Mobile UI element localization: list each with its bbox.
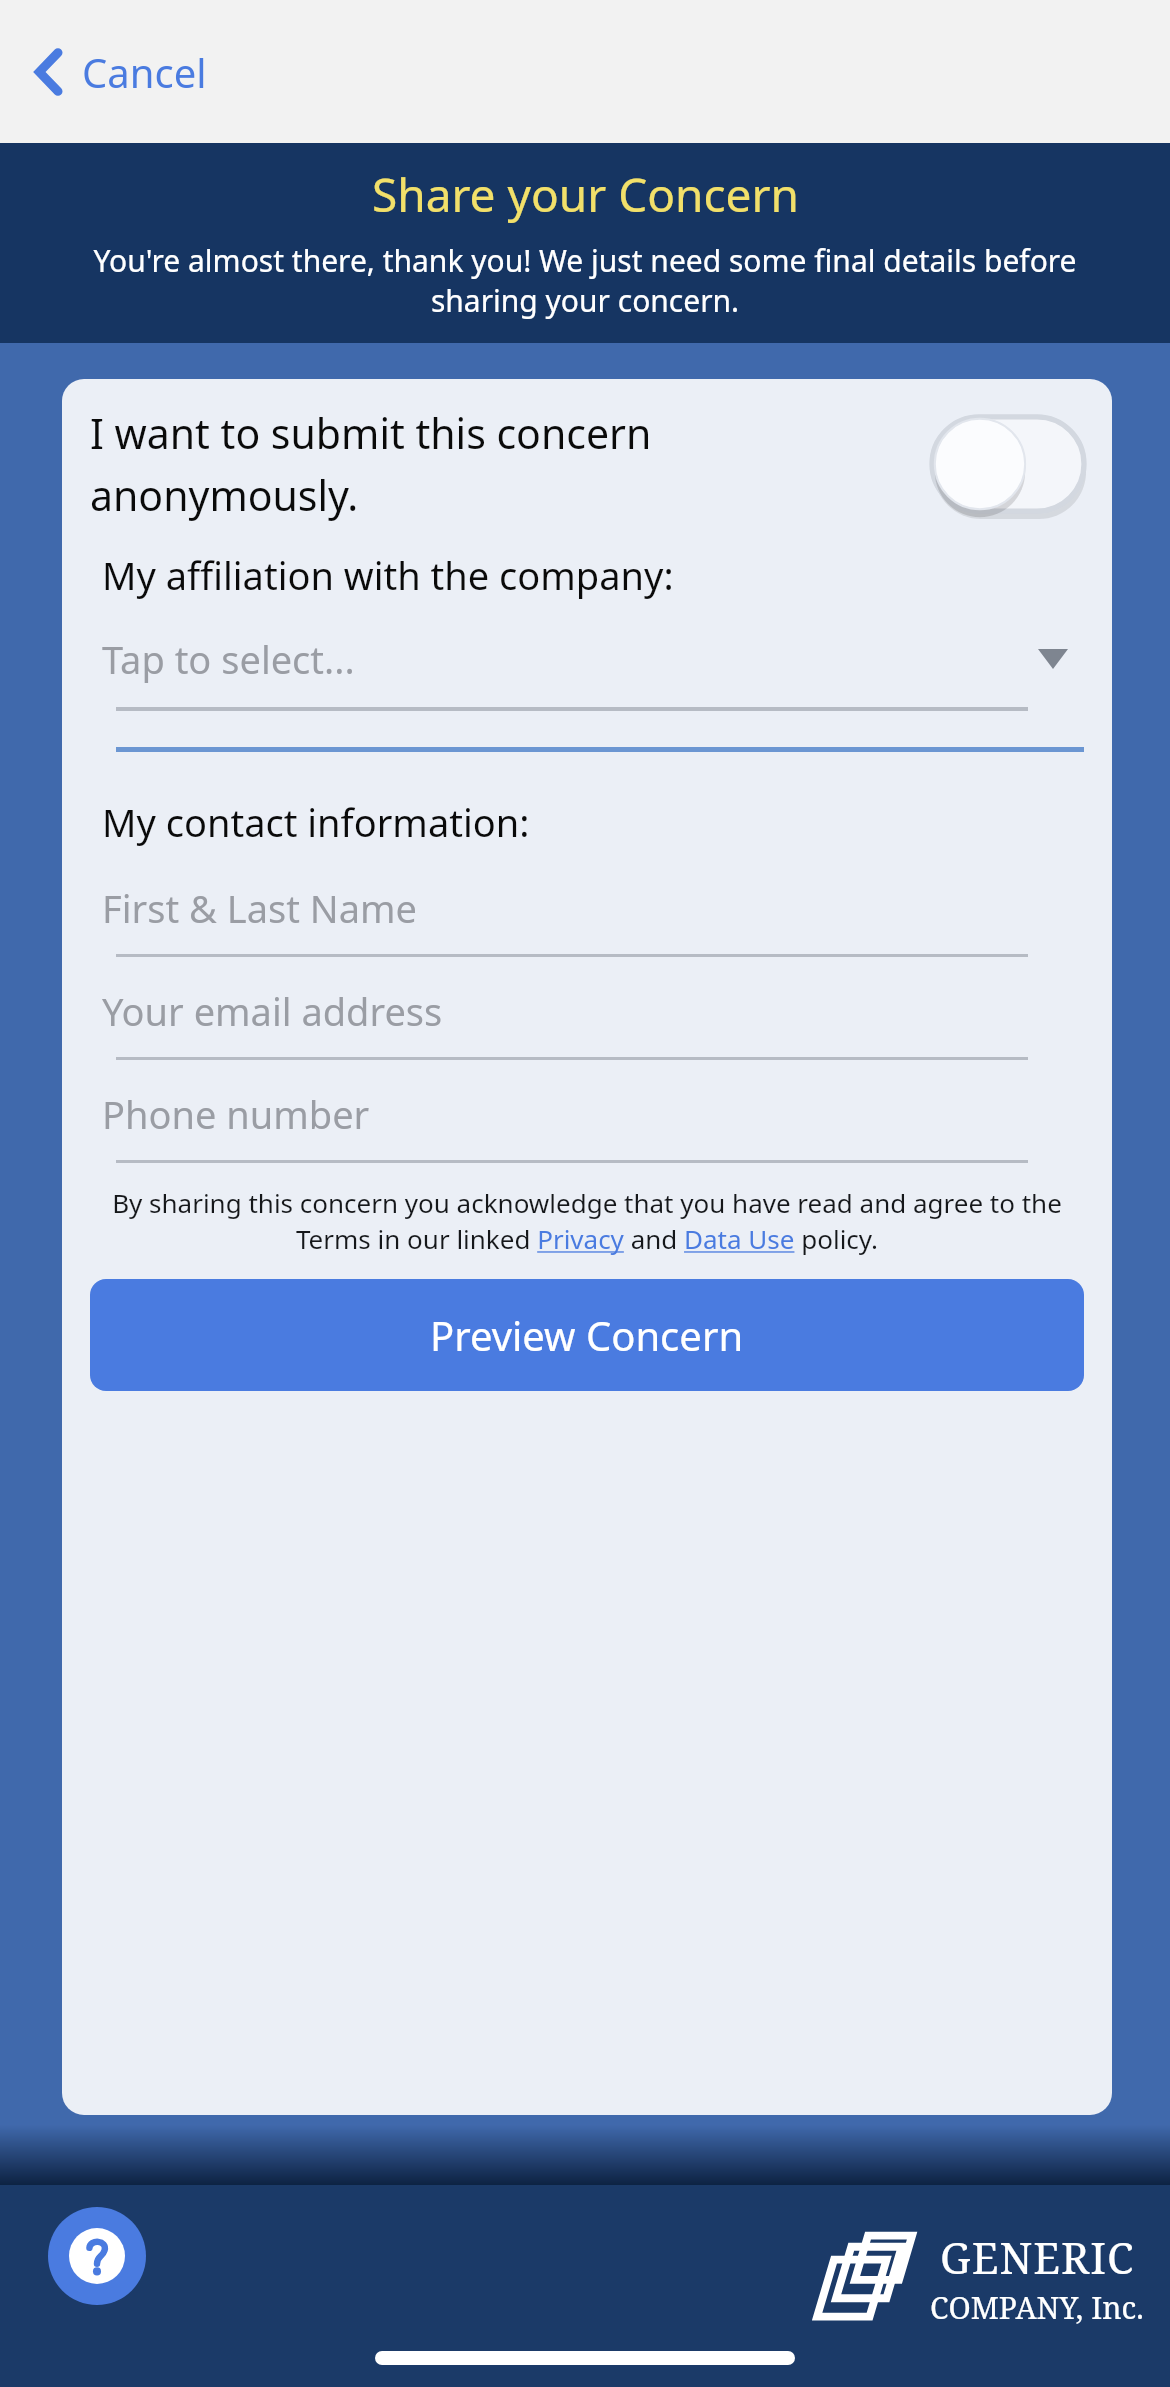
- staticText: Tap to select...: [102, 633, 1038, 685]
- staticText: Your email address: [102, 985, 443, 1037]
- button[interactable]: Submit anonymously toggle: [932, 416, 1084, 512]
- button[interactable]: Tap to select...: [90, 633, 1084, 711]
- staticText: By sharing this concern you acknowledge …: [94, 1185, 1080, 1257]
- staticText: Cancel: [82, 45, 207, 99]
- button[interactable]: First & Last Name: [90, 882, 1084, 957]
- staticText: My affiliation with the company:: [102, 549, 674, 601]
- button[interactable]: Help: [48, 2207, 146, 2305]
- button[interactable]: Your email address: [90, 985, 1084, 1060]
- button[interactable]: Preview Concern: [90, 1279, 1084, 1391]
- button[interactable]: I want to submit this concern anonymousl…: [90, 397, 1084, 531]
- button[interactable]: Phone number: [90, 1088, 1084, 1163]
- staticText: You're almost there, thank you! We just …: [40, 240, 1130, 321]
- staticText: Phone number: [102, 1088, 370, 1140]
- staticText: COMPANY, Inc.: [930, 2287, 1144, 2328]
- staticText: Preview Concern: [430, 1308, 744, 1362]
- button[interactable]: Cancel: [26, 39, 223, 105]
- staticText: I want to submit this concern anonymousl…: [90, 405, 916, 523]
- staticText: My contact information:: [102, 796, 530, 848]
- staticText: First & Last Name: [102, 882, 417, 934]
- staticText: Share your Concern: [372, 163, 799, 226]
- staticText: GENERIC: [940, 2228, 1135, 2287]
